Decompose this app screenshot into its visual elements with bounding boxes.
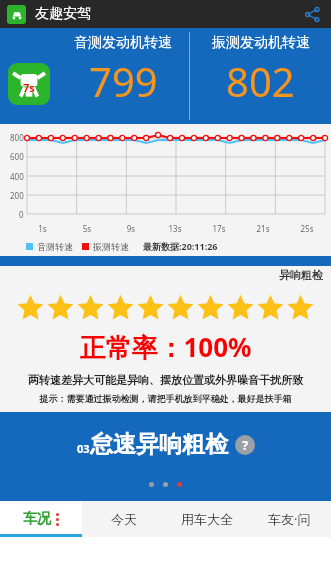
staticText: 最新数据:20:11:26 <box>143 240 218 252</box>
staticText: 7s <box>23 80 35 95</box>
staticText: 怠速异响粗检 <box>90 430 228 459</box>
staticText: 振测发动机转速 <box>212 34 310 52</box>
staticText: 25s <box>285 223 329 234</box>
button[interactable]: 用车大全 <box>165 501 248 537</box>
staticText: 5s <box>65 223 109 234</box>
staticText: 异响粗检 <box>279 268 323 282</box>
staticText: 400 <box>10 171 24 182</box>
staticText: 振测转速 <box>93 241 129 252</box>
staticText: 13s <box>153 223 197 234</box>
staticText: 今天 <box>111 511 137 527</box>
staticText: 0 <box>19 209 24 220</box>
staticText: 799 <box>89 54 158 108</box>
staticText: 9s <box>109 223 153 234</box>
button[interactable]: 车况 <box>0 501 82 537</box>
staticText: 200 <box>10 190 24 201</box>
staticText: 两转速差异大可能是异响、摆放位置或外界噪音干扰所致 <box>0 373 331 387</box>
staticText: 800 <box>10 132 24 143</box>
staticText: 03 <box>77 441 90 456</box>
staticText: 音测发动机转速 <box>74 34 172 52</box>
staticText: 车友·问 <box>268 510 311 528</box>
staticText: 提示：需要通过振动检测，请把手机放到平稳处，最好是扶手箱 <box>0 393 331 404</box>
staticText: ? <box>242 436 249 454</box>
staticText: 音测转速 <box>37 241 73 252</box>
staticText: 正常率：100% <box>0 329 331 365</box>
button[interactable]: Share <box>300 2 324 26</box>
button[interactable]: 车友·问 <box>248 501 331 537</box>
staticText: 600 <box>10 151 24 162</box>
staticText: 21s <box>241 223 285 234</box>
staticText: 车况 <box>23 510 51 528</box>
staticText: 802 <box>226 54 295 108</box>
button[interactable]: Help <box>235 435 255 455</box>
staticText: 友趣安驾 <box>35 5 91 23</box>
button[interactable]: 今天 <box>82 501 165 537</box>
staticText: 用车大全 <box>181 511 233 527</box>
staticText: 1s <box>20 223 65 234</box>
staticText: 17s <box>197 223 241 234</box>
